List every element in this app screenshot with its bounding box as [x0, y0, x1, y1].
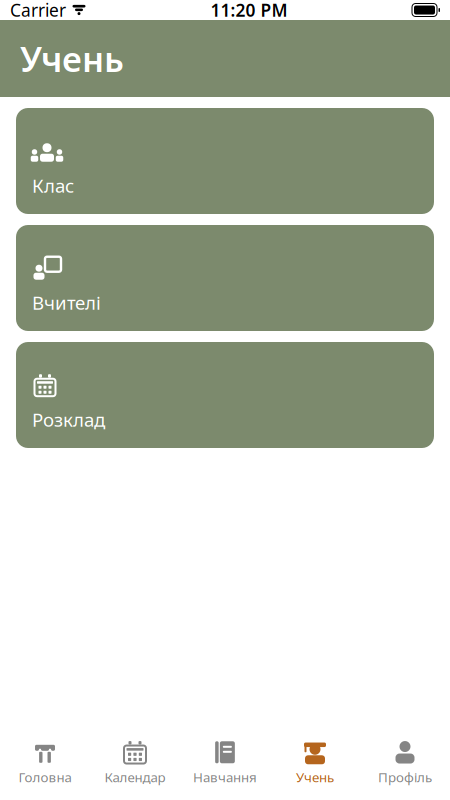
staticText: Профіль	[378, 768, 432, 786]
staticText: 11:20 PM	[210, 0, 287, 21]
button[interactable]: Розклад	[16, 342, 434, 448]
button[interactable]: Вчителі	[16, 225, 434, 331]
button[interactable]: Навчання	[180, 734, 270, 792]
button[interactable]: Профіль	[360, 734, 450, 792]
staticText: Розклад	[32, 407, 105, 432]
button[interactable]: Учень	[270, 734, 360, 792]
button[interactable]: Клас	[16, 108, 434, 214]
staticText: Вчителі	[32, 290, 101, 315]
button[interactable]: Головна	[0, 734, 90, 792]
staticText: Головна	[18, 768, 71, 786]
staticText: Учень	[20, 35, 124, 81]
button[interactable]: Календар	[90, 734, 180, 792]
staticText: Клас	[32, 173, 74, 198]
staticText: Навчання	[193, 768, 257, 786]
staticText: Учень	[296, 768, 334, 786]
staticText: Carrier	[10, 0, 66, 21]
staticText: Календар	[104, 768, 165, 786]
